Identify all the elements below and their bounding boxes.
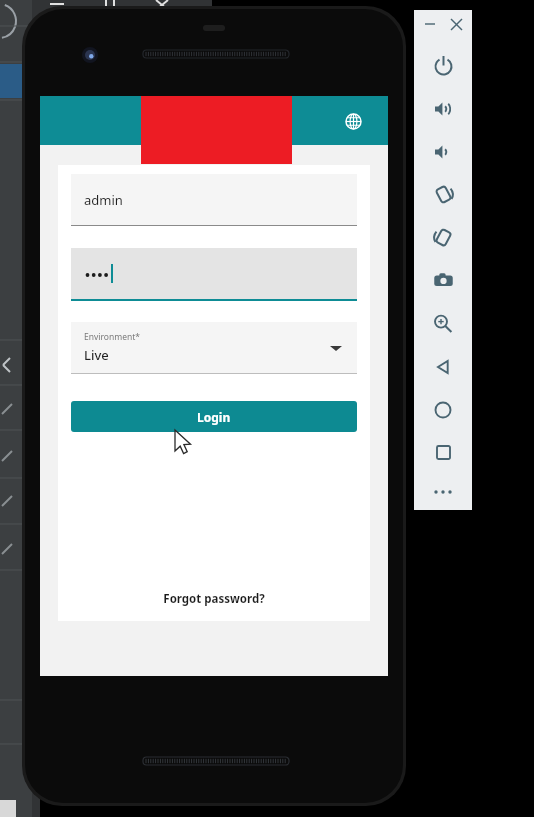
button[interactable]: More: [414, 474, 472, 510]
button[interactable]: [71, 248, 357, 301]
button[interactable]: admin: [71, 174, 357, 226]
staticText: Login: [197, 409, 231, 425]
button[interactable]: Back: [414, 345, 472, 388]
button[interactable]: Rotate right: [414, 216, 472, 259]
button[interactable]: Zoom: [414, 302, 472, 345]
button[interactable]: Environment*: [71, 322, 357, 374]
button[interactable]: Rotate left: [414, 173, 472, 216]
staticText: Live: [84, 346, 109, 364]
button[interactable]: Power: [414, 44, 472, 87]
button[interactable]: Home: [414, 388, 472, 431]
staticText: Forgot password?: [163, 591, 265, 607]
button[interactable]: Take screenshot: [414, 259, 472, 302]
button[interactable]: Close: [446, 14, 466, 34]
staticText: admin: [84, 191, 123, 209]
button[interactable]: Overview: [414, 431, 472, 474]
button[interactable]: Forgot password?: [58, 591, 370, 607]
button[interactable]: Volume down: [414, 130, 472, 173]
staticText: Environment*: [84, 331, 140, 343]
button[interactable]: Login: [71, 401, 357, 432]
button[interactable]: Volume up: [414, 87, 472, 130]
button[interactable]: Minimize: [420, 14, 440, 34]
button[interactable]: Change language: [338, 106, 368, 136]
